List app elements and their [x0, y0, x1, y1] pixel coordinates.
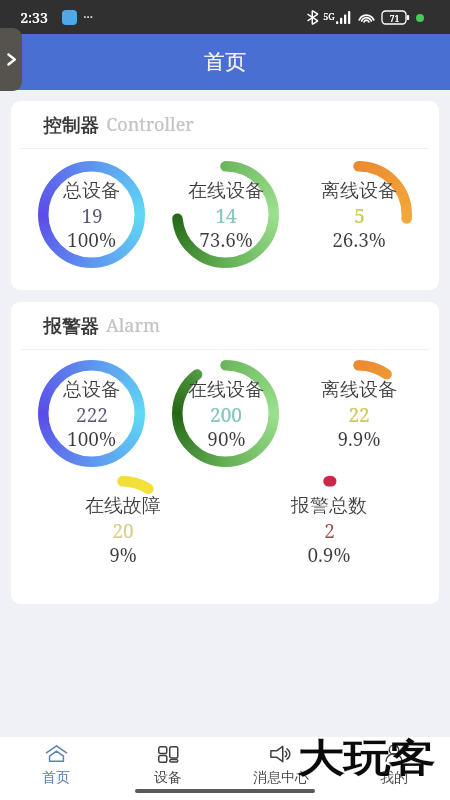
staticText: Controller	[106, 112, 194, 137]
staticText: 首页	[42, 769, 70, 787]
staticText: 9.9%	[337, 426, 381, 450]
staticText: 2:33	[20, 8, 48, 27]
staticText: 总设备	[63, 179, 120, 203]
staticText: 在线设备	[188, 179, 264, 203]
staticText: 5G	[323, 10, 335, 22]
staticText: 90%	[207, 426, 246, 450]
staticText: 20	[112, 518, 134, 542]
staticText: 离线设备	[321, 378, 397, 402]
staticText: 0.9%	[307, 542, 351, 566]
staticText: 14	[215, 203, 237, 227]
staticText: 100%	[67, 426, 116, 450]
staticText: 100%	[67, 227, 116, 251]
button[interactable]: Open drawer	[0, 28, 22, 91]
staticText: 在线设备	[188, 378, 264, 402]
staticText: 19	[81, 203, 103, 227]
staticText: 26.3%	[332, 227, 386, 251]
button[interactable]: 我的	[337, 737, 450, 787]
staticText: 消息中心	[253, 769, 309, 787]
staticText: 73.6%	[199, 227, 253, 251]
button[interactable]: 消息中心	[224, 737, 337, 787]
staticText: 71	[389, 12, 400, 24]
staticText: 9%	[109, 542, 137, 566]
staticText: 报警总数	[291, 494, 367, 518]
staticText: 总设备	[63, 378, 120, 402]
button[interactable]: 首页	[0, 737, 112, 787]
staticText: ···	[83, 8, 93, 26]
staticText: 2	[324, 518, 335, 542]
staticText: 控制器	[43, 114, 99, 137]
staticText: 在线故障	[85, 494, 161, 518]
button[interactable]: 设备	[112, 737, 224, 787]
staticText: 设备	[154, 769, 182, 787]
staticText: 大玩客	[297, 734, 434, 783]
staticText: 离线设备	[321, 179, 397, 203]
staticText: 200	[210, 402, 242, 426]
staticText: 5	[354, 203, 365, 227]
staticText: 222	[76, 402, 108, 426]
staticText: 报警器	[43, 315, 99, 338]
staticText: 22	[348, 402, 370, 426]
staticText: 我的	[380, 769, 408, 787]
staticText: Alarm	[106, 313, 160, 338]
staticText: 首页	[204, 49, 246, 75]
